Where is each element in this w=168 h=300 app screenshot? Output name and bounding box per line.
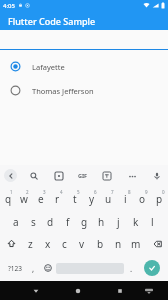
staticText: 9: [145, 189, 148, 195]
button[interactable]: Shift: [0, 232, 22, 255]
button[interactable]: z: [22, 232, 39, 255]
staticText: v: [79, 237, 85, 251]
button[interactable]: s: [25, 209, 42, 232]
button[interactable]: ,: [27, 255, 40, 281]
button[interactable]: l: [144, 209, 161, 232]
button[interactable]: 0: [151, 186, 168, 209]
button[interactable]: Thomas Jefferson: [0, 82, 168, 99]
staticText: d: [47, 215, 54, 229]
button[interactable]: 3: [32, 186, 49, 209]
button[interactable]: k: [127, 209, 144, 232]
button[interactable]: More options: [125, 169, 139, 183]
staticText: 5: [77, 189, 80, 195]
button[interactable]: .: [124, 255, 139, 281]
staticText: z: [28, 237, 33, 251]
button[interactable]: Enter: [139, 255, 165, 281]
button[interactable]: a: [7, 209, 25, 232]
button[interactable]: c: [56, 232, 73, 255]
staticText: Flutter Code Sample: [8, 15, 96, 27]
staticText: ?123: [8, 264, 22, 273]
staticText: p: [156, 192, 163, 206]
button[interactable]: 9: [134, 186, 151, 209]
button[interactable]: Lafayette: [0, 58, 168, 75]
button[interactable]: g: [76, 209, 93, 232]
button[interactable]: 1: [0, 186, 16, 209]
button[interactable]: h: [93, 209, 110, 232]
staticText: q: [5, 192, 12, 206]
staticText: 2: [26, 189, 29, 195]
staticText: 7: [111, 189, 114, 195]
button[interactable]: Back: [4, 169, 17, 182]
staticText: 8: [128, 189, 131, 195]
button[interactable]: 6: [83, 186, 100, 209]
staticText: m: [131, 237, 141, 251]
staticText: Thomas Jefferson: [32, 86, 94, 96]
staticText: GIF: [78, 172, 88, 179]
button[interactable]: Back: [28, 283, 44, 299]
button[interactable]: n: [109, 232, 127, 255]
button[interactable]: 5: [66, 186, 83, 209]
staticText: b: [97, 237, 104, 251]
staticText: 0: [162, 189, 165, 195]
staticText: w: [20, 192, 28, 206]
staticText: 4: [60, 189, 63, 195]
button[interactable]: b: [91, 232, 109, 255]
staticText: .: [130, 263, 133, 274]
button[interactable]: v: [73, 232, 91, 255]
button[interactable]: x: [39, 232, 56, 255]
button[interactable]: Backspace: [145, 232, 168, 255]
button[interactable]: Voice input: [150, 169, 164, 183]
staticText: f: [66, 215, 70, 229]
button[interactable]: GIF: [77, 172, 89, 179]
button[interactable]: Stickers: [52, 169, 66, 183]
staticText: c: [62, 237, 67, 251]
button[interactable]: Home: [70, 283, 86, 299]
staticText: ,: [32, 263, 35, 274]
button[interactable]: Hide keyboard: [142, 284, 156, 298]
staticText: y: [89, 192, 95, 206]
staticText: 4:05: [3, 2, 15, 10]
staticText: 6: [94, 189, 97, 195]
staticText: r: [55, 192, 60, 206]
staticText: Lafayette: [32, 62, 65, 72]
button[interactable]: Search: [27, 169, 41, 183]
button[interactable]: m: [127, 232, 145, 255]
staticText: n: [115, 237, 122, 251]
button[interactable]: 2: [16, 186, 32, 209]
button[interactable]: f: [59, 209, 76, 232]
button[interactable]: Translate: [100, 169, 114, 183]
staticText: i: [124, 192, 127, 206]
staticText: u: [105, 192, 112, 206]
button[interactable]: 4: [49, 186, 66, 209]
button[interactable]: Recent apps: [112, 283, 128, 299]
staticText: 1: [10, 189, 13, 195]
staticText: g: [81, 215, 88, 229]
button[interactable]: Emoji: [40, 255, 56, 281]
staticText: 3: [43, 189, 46, 195]
staticText: l: [151, 215, 154, 229]
button[interactable]: d: [42, 209, 59, 232]
staticText: s: [31, 215, 36, 229]
button[interactable]: 8: [117, 186, 134, 209]
staticText: o: [139, 192, 146, 206]
staticText: a: [13, 215, 19, 229]
staticText: j: [117, 215, 120, 229]
staticText: x: [45, 237, 51, 251]
staticText: e: [38, 192, 44, 206]
button[interactable]: 7: [100, 186, 117, 209]
button[interactable]: ?123: [3, 255, 27, 281]
button[interactable]: j: [110, 209, 127, 232]
staticText: k: [133, 215, 139, 229]
staticText: t: [73, 192, 77, 206]
staticText: h: [98, 215, 105, 229]
